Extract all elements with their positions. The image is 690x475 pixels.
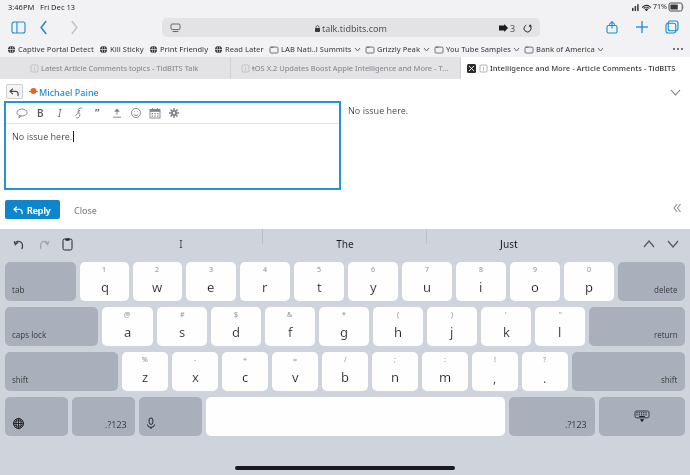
button[interactable]: Undo (10, 235, 28, 253)
button[interactable]: Read Later (215, 44, 264, 54)
button[interactable]: Share (602, 17, 622, 37)
button[interactable]: 8 (456, 262, 506, 301)
button[interactable]: / (322, 352, 368, 391)
button[interactable]: shift (572, 352, 685, 391)
button[interactable]: 3 (186, 262, 236, 301)
button[interactable]: caps lock (5, 307, 98, 346)
staticText: b (341, 368, 349, 386)
button[interactable]: Calendar (145, 103, 164, 122)
button[interactable]: Just (427, 229, 590, 259)
staticText: Kill Sticky (110, 44, 144, 54)
button[interactable]: ) (427, 307, 477, 346)
button[interactable]: I (50, 103, 69, 122)
staticText: Just (500, 237, 518, 251)
button[interactable]: - (172, 352, 218, 391)
button[interactable]: Previous field (640, 235, 658, 253)
button[interactable]: Forward (64, 17, 84, 37)
button[interactable]: ? (522, 352, 568, 391)
button[interactable]: Reply to post (6, 84, 23, 99)
button[interactable]: Paste (58, 235, 76, 253)
button[interactable]: Close (70, 201, 101, 219)
button[interactable]: + (222, 352, 268, 391)
button[interactable]: Michael Paine (39, 86, 99, 98)
staticText: Captive Portal Detect (18, 44, 94, 54)
button[interactable]: 2 (133, 262, 182, 301)
button[interactable]: Options (164, 103, 183, 122)
button[interactable]: .?123 (509, 397, 595, 436)
button[interactable]: .?123 (72, 397, 135, 436)
button[interactable]: Expand editor (670, 201, 684, 215)
button[interactable]: ! (472, 352, 518, 391)
button[interactable]: Change keyboard language (5, 397, 68, 436)
staticText: ( (397, 310, 400, 320)
button[interactable]: New tab (632, 17, 652, 37)
button[interactable]: Reply (5, 200, 60, 219)
button[interactable]: 0 (564, 262, 614, 301)
button[interactable]: B (31, 103, 50, 122)
staticText: shift (661, 374, 678, 385)
button[interactable]: Bank of America (525, 44, 603, 54)
button[interactable]: = (272, 352, 318, 391)
button[interactable]: ” (88, 103, 107, 122)
button[interactable]: $ (211, 307, 261, 346)
button[interactable]: ŧOS X.2 Updates Boost Apple Intelligence… (231, 57, 460, 79)
button[interactable]: Next field (664, 235, 682, 253)
button[interactable]: * (319, 307, 369, 346)
button[interactable]: Collapse (668, 85, 682, 99)
staticText: 0 (587, 265, 592, 275)
button[interactable]: Close tab (461, 57, 690, 79)
button[interactable]: Print Friendly (150, 44, 209, 54)
staticText: n (391, 368, 400, 386)
button[interactable]: I (100, 229, 262, 259)
button[interactable]: 1 (80, 262, 129, 301)
button[interactable]: @ (102, 307, 153, 346)
button[interactable]: & (265, 307, 315, 346)
button[interactable]: 6 (348, 262, 398, 301)
button[interactable]: Emoji (126, 103, 145, 122)
button[interactable]: More bookmarks (671, 42, 685, 56)
button[interactable]: 4 (240, 262, 290, 301)
button[interactable]: Close tab (467, 64, 476, 73)
button[interactable]: Hide keyboard (599, 397, 685, 436)
button[interactable]: Grizzly Peak (366, 44, 429, 54)
staticText: Bank of America (536, 44, 595, 54)
button[interactable]: Show all tabs (662, 17, 682, 37)
button[interactable]: " (535, 307, 585, 346)
staticText: I (179, 237, 183, 251)
button[interactable]: ; (372, 352, 418, 391)
button[interactable]: Page settings (162, 18, 540, 37)
button[interactable]: return (589, 307, 685, 346)
staticText: No issue here. (348, 104, 409, 116)
staticText: shift (12, 374, 29, 385)
staticText: a (124, 323, 132, 341)
button[interactable]: Reload (522, 23, 533, 34)
button[interactable]: ( (373, 307, 423, 346)
button[interactable]: Upload (107, 103, 126, 122)
button[interactable]: tab (5, 262, 76, 301)
button[interactable]: Back (34, 17, 54, 37)
button[interactable]: Dictation (139, 397, 202, 436)
button[interactable]: Show sidebar (8, 17, 28, 37)
button[interactable]: The (263, 229, 426, 259)
staticText: 1 (102, 265, 107, 275)
button[interactable]: shift (5, 352, 118, 391)
button[interactable]: Captive Portal Detect (8, 44, 94, 54)
button[interactable]: # (157, 307, 207, 346)
staticText: f (288, 323, 293, 341)
staticText: * (342, 310, 346, 320)
button[interactable]: : (422, 352, 468, 391)
button[interactable]: delete (618, 262, 685, 301)
button[interactable]: % (122, 352, 168, 391)
button[interactable]: Quote bubble (12, 103, 31, 122)
button[interactable]: Redo (34, 235, 52, 253)
button[interactable]: Link (69, 103, 88, 122)
button[interactable]: 9 (510, 262, 560, 301)
button[interactable]: 7 (402, 262, 452, 301)
button[interactable]: Latest Article Comments topics - TidBITS… (0, 57, 230, 79)
button[interactable]: 5 (294, 262, 344, 301)
button[interactable]: LAB Nati..l Summits (270, 44, 360, 54)
button[interactable]: Kill Sticky (100, 44, 144, 54)
button[interactable]: ' (481, 307, 531, 346)
button[interactable]: You Tube Samples (435, 44, 519, 54)
